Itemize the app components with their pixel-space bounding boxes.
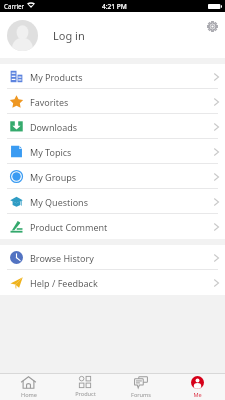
button[interactable]: Downloads [0, 114, 225, 139]
button[interactable]: Forums [113, 374, 169, 400]
button[interactable]: Help / Feedback [0, 270, 225, 295]
staticText: Product Comment [30, 221, 108, 233]
staticText: Me [193, 391, 202, 399]
button[interactable]: Me [169, 374, 225, 400]
staticText: Downloads [30, 121, 78, 133]
button[interactable]: Product [57, 374, 113, 400]
staticText: Carrier [4, 2, 25, 10]
staticText: Product [75, 390, 96, 398]
button[interactable]: My Products [0, 64, 225, 89]
staticText: My Groups [30, 171, 77, 183]
button[interactable]: My Topics [0, 139, 225, 164]
button[interactable]: Browse History [0, 245, 225, 270]
staticText: Forums [131, 391, 151, 399]
staticText: My Topics [30, 146, 72, 158]
button[interactable]: Product Comment [0, 214, 225, 239]
staticText: Help / Feedback [30, 277, 98, 289]
staticText: Log in [53, 28, 85, 43]
button[interactable]: My Groups [0, 164, 225, 189]
button[interactable]: Home [0, 374, 57, 400]
staticText: Browse History [30, 252, 94, 264]
staticText: Home [21, 391, 37, 399]
staticText: My Products [30, 71, 83, 83]
button[interactable]: My Questions [0, 189, 225, 214]
staticText: Favorites [30, 96, 69, 108]
button[interactable]: Settings [203, 17, 221, 35]
button[interactable]: Favorites [0, 89, 225, 114]
staticText: 4:21 PM [102, 2, 127, 11]
staticText: My Questions [30, 196, 88, 208]
